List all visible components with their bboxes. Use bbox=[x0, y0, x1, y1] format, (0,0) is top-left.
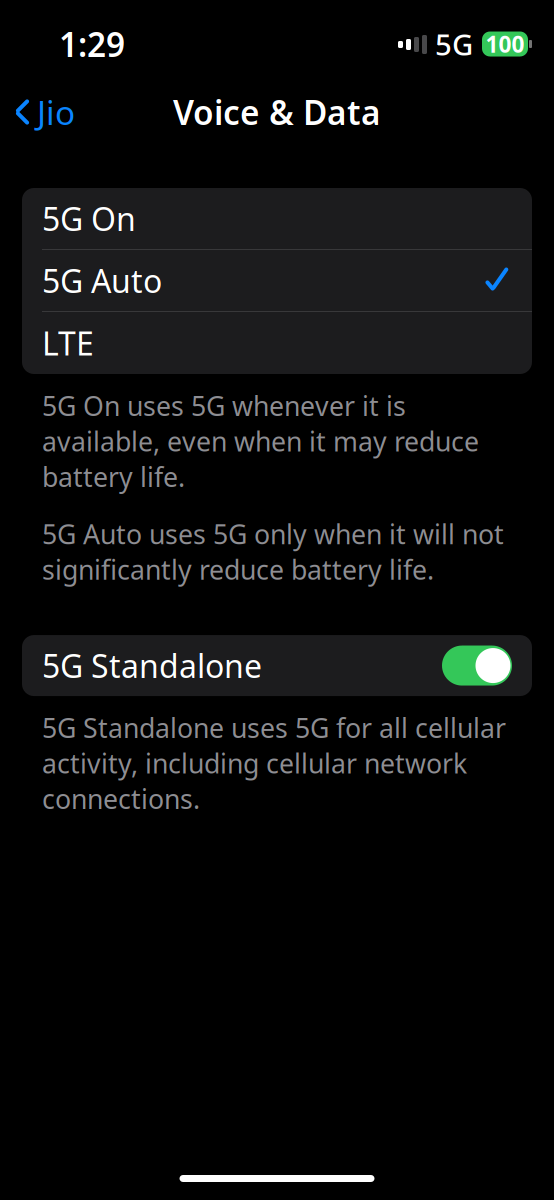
staticText: 5G bbox=[435, 24, 473, 63]
staticText: 5G Auto uses 5G only when it will not si… bbox=[42, 516, 504, 587]
staticText: 5G Standalone uses 5G for all cellular a… bbox=[42, 710, 506, 816]
staticText: LTE bbox=[42, 322, 94, 364]
staticText: 5G On uses 5G whenever it is available, … bbox=[42, 388, 479, 494]
staticText: 5G Auto bbox=[42, 259, 162, 302]
staticText: 1:29 bbox=[59, 22, 125, 66]
staticText: Jio bbox=[37, 90, 75, 134]
staticText: Voice & Data bbox=[173, 90, 381, 134]
staticText: 100 bbox=[485, 29, 524, 59]
button[interactable]: Jio bbox=[0, 87, 89, 137]
staticText: 5G On bbox=[42, 197, 136, 240]
button[interactable]: 5G On bbox=[22, 188, 532, 250]
button[interactable]: 5G Standalone bbox=[22, 635, 532, 696]
button[interactable]: LTE bbox=[22, 312, 532, 374]
staticText: 5G Standalone bbox=[42, 644, 262, 687]
button[interactable]: 5G Auto bbox=[22, 250, 532, 312]
